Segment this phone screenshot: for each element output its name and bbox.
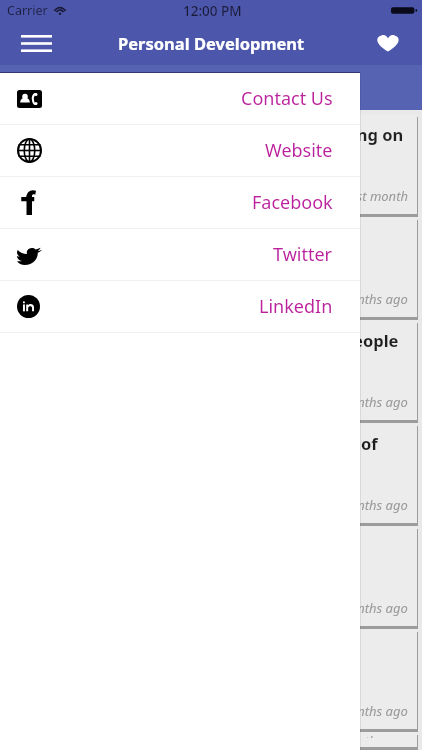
staticText: 12:00 PM [183,2,242,20]
staticText: LinkedIn [259,294,333,319]
button[interactable]: Mindful living and the simple art [4,629,417,729]
button[interactable]: Reflections on things that I am still wo… [4,114,417,214]
staticText: Thinking about becoming a better writer [17,226,353,248]
staticText: Carrier [7,2,48,19]
staticText: 6 months ago [328,702,408,720]
button[interactable]: The long road towards achieving mastery … [4,423,417,523]
staticText: Twitter [273,242,333,267]
staticText: 4 months ago [328,496,408,514]
button[interactable]: Favorites [368,21,422,65]
staticText: Facebook [252,190,333,215]
staticText: 7 months ago [328,732,408,738]
button[interactable]: How to win friends and really influence … [4,320,417,420]
staticText: Website [265,138,333,163]
staticText: 3 months ago [328,393,408,411]
button[interactable]: Twitter [0,229,360,281]
button[interactable]: Website [0,125,360,177]
button[interactable]: LinkedIn [0,281,360,333]
button[interactable]: Daily habits for a life of quiet [4,526,417,626]
staticText: 5 months ago [328,599,408,617]
staticText: How to win friends and really influence … [17,329,399,351]
button[interactable]: Reading more books [4,732,417,747]
button[interactable]: Facebook [0,177,360,229]
staticText: Last month [343,187,408,205]
staticText: Contact Us [241,86,333,111]
button[interactable]: Open navigation menu [0,21,64,65]
staticText: Reflections on things that I am still wo… [17,123,404,145]
button[interactable]: Contact Us [0,73,360,125]
staticText: 2 months ago [328,290,408,308]
button[interactable]: Thinking about becoming a better writer [4,217,417,317]
staticText: The long road towards achieving mastery … [17,432,378,454]
staticText: Personal Development [118,32,305,54]
